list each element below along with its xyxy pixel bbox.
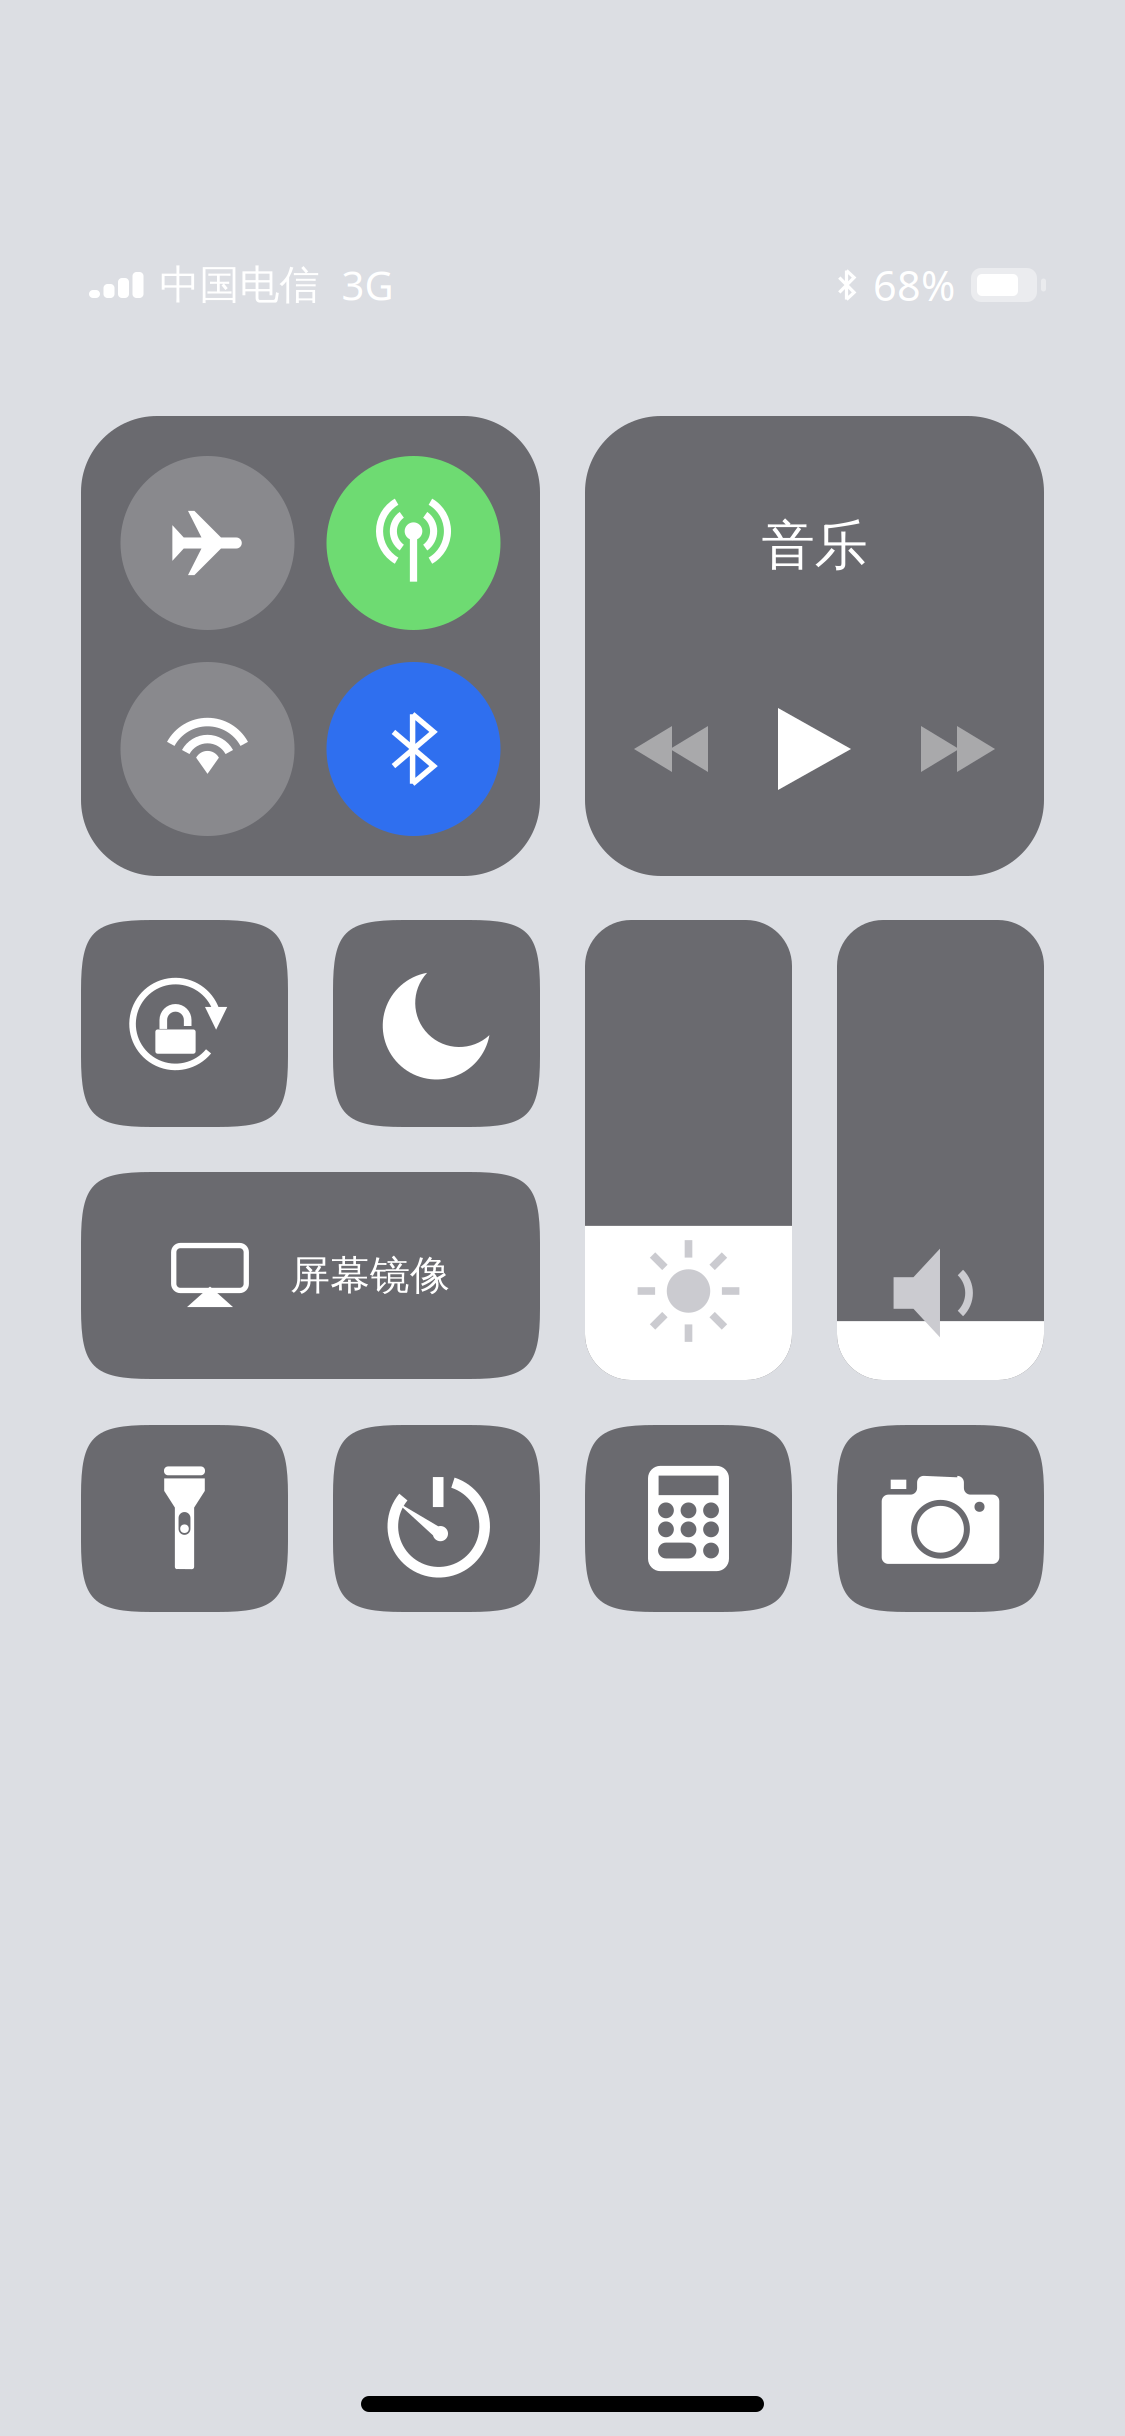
button[interactable]: Wi-Fi: [120, 662, 294, 836]
button[interactable]: Screen Mirroring: [81, 1172, 540, 1379]
button[interactable]: Cellular Data: [326, 456, 500, 630]
staticText: 音乐: [761, 513, 867, 578]
staticText: 屏幕镜像: [290, 1251, 450, 1300]
button[interactable]: Brightness: [585, 920, 792, 1380]
button[interactable]: Calculator: [585, 1425, 792, 1612]
button[interactable]: Timer: [333, 1425, 540, 1612]
button[interactable]: Do Not Disturb: [333, 920, 540, 1127]
button[interactable]: Music: [585, 416, 1044, 876]
button[interactable]: Airplane Mode: [120, 456, 294, 630]
button[interactable]: Camera: [837, 1425, 1044, 1612]
staticText: 68%: [873, 258, 955, 312]
button[interactable]: Volume: [837, 920, 1044, 1380]
button[interactable]: Flashlight: [81, 1425, 288, 1612]
button[interactable]: Rotation Lock: [81, 920, 288, 1127]
staticText: 3G: [341, 258, 393, 311]
button[interactable]: Bluetooth: [326, 662, 500, 836]
staticText: 中国电信: [159, 260, 319, 309]
